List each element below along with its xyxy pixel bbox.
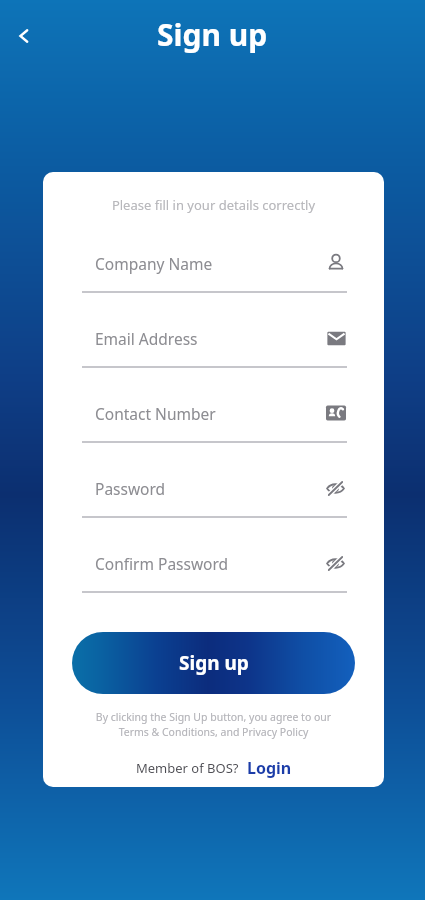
staticText: Password [95,478,325,499]
staticText: Sign up [179,650,249,676]
staticText: Confirm Password [95,553,325,574]
button[interactable]: Confirm Password [43,535,384,610]
staticText: Email Address [95,328,327,349]
staticText: Login [247,757,292,779]
button[interactable]: Back [2,14,46,58]
staticText: By clicking the Sign Up button, you agre… [55,710,372,739]
other: Show password [325,478,346,499]
button[interactable]: Company Name [43,235,384,310]
other: Company name [326,253,346,273]
other: Show password [325,553,346,574]
button[interactable]: Email Address [43,310,384,385]
button[interactable]: Sign up [72,632,355,694]
button[interactable]: Password [43,460,384,535]
other: Email address [327,329,346,348]
staticText: Please fill in your details correctly [43,196,384,214]
staticText: Member of BOS? [136,759,239,777]
staticText: Sign up [157,14,268,55]
staticText: Contact Number [95,403,326,424]
staticText: Company Name [95,253,326,274]
button[interactable]: Login [247,757,292,779]
button[interactable]: Contact Number [43,385,384,460]
other: Contact number [326,403,346,423]
